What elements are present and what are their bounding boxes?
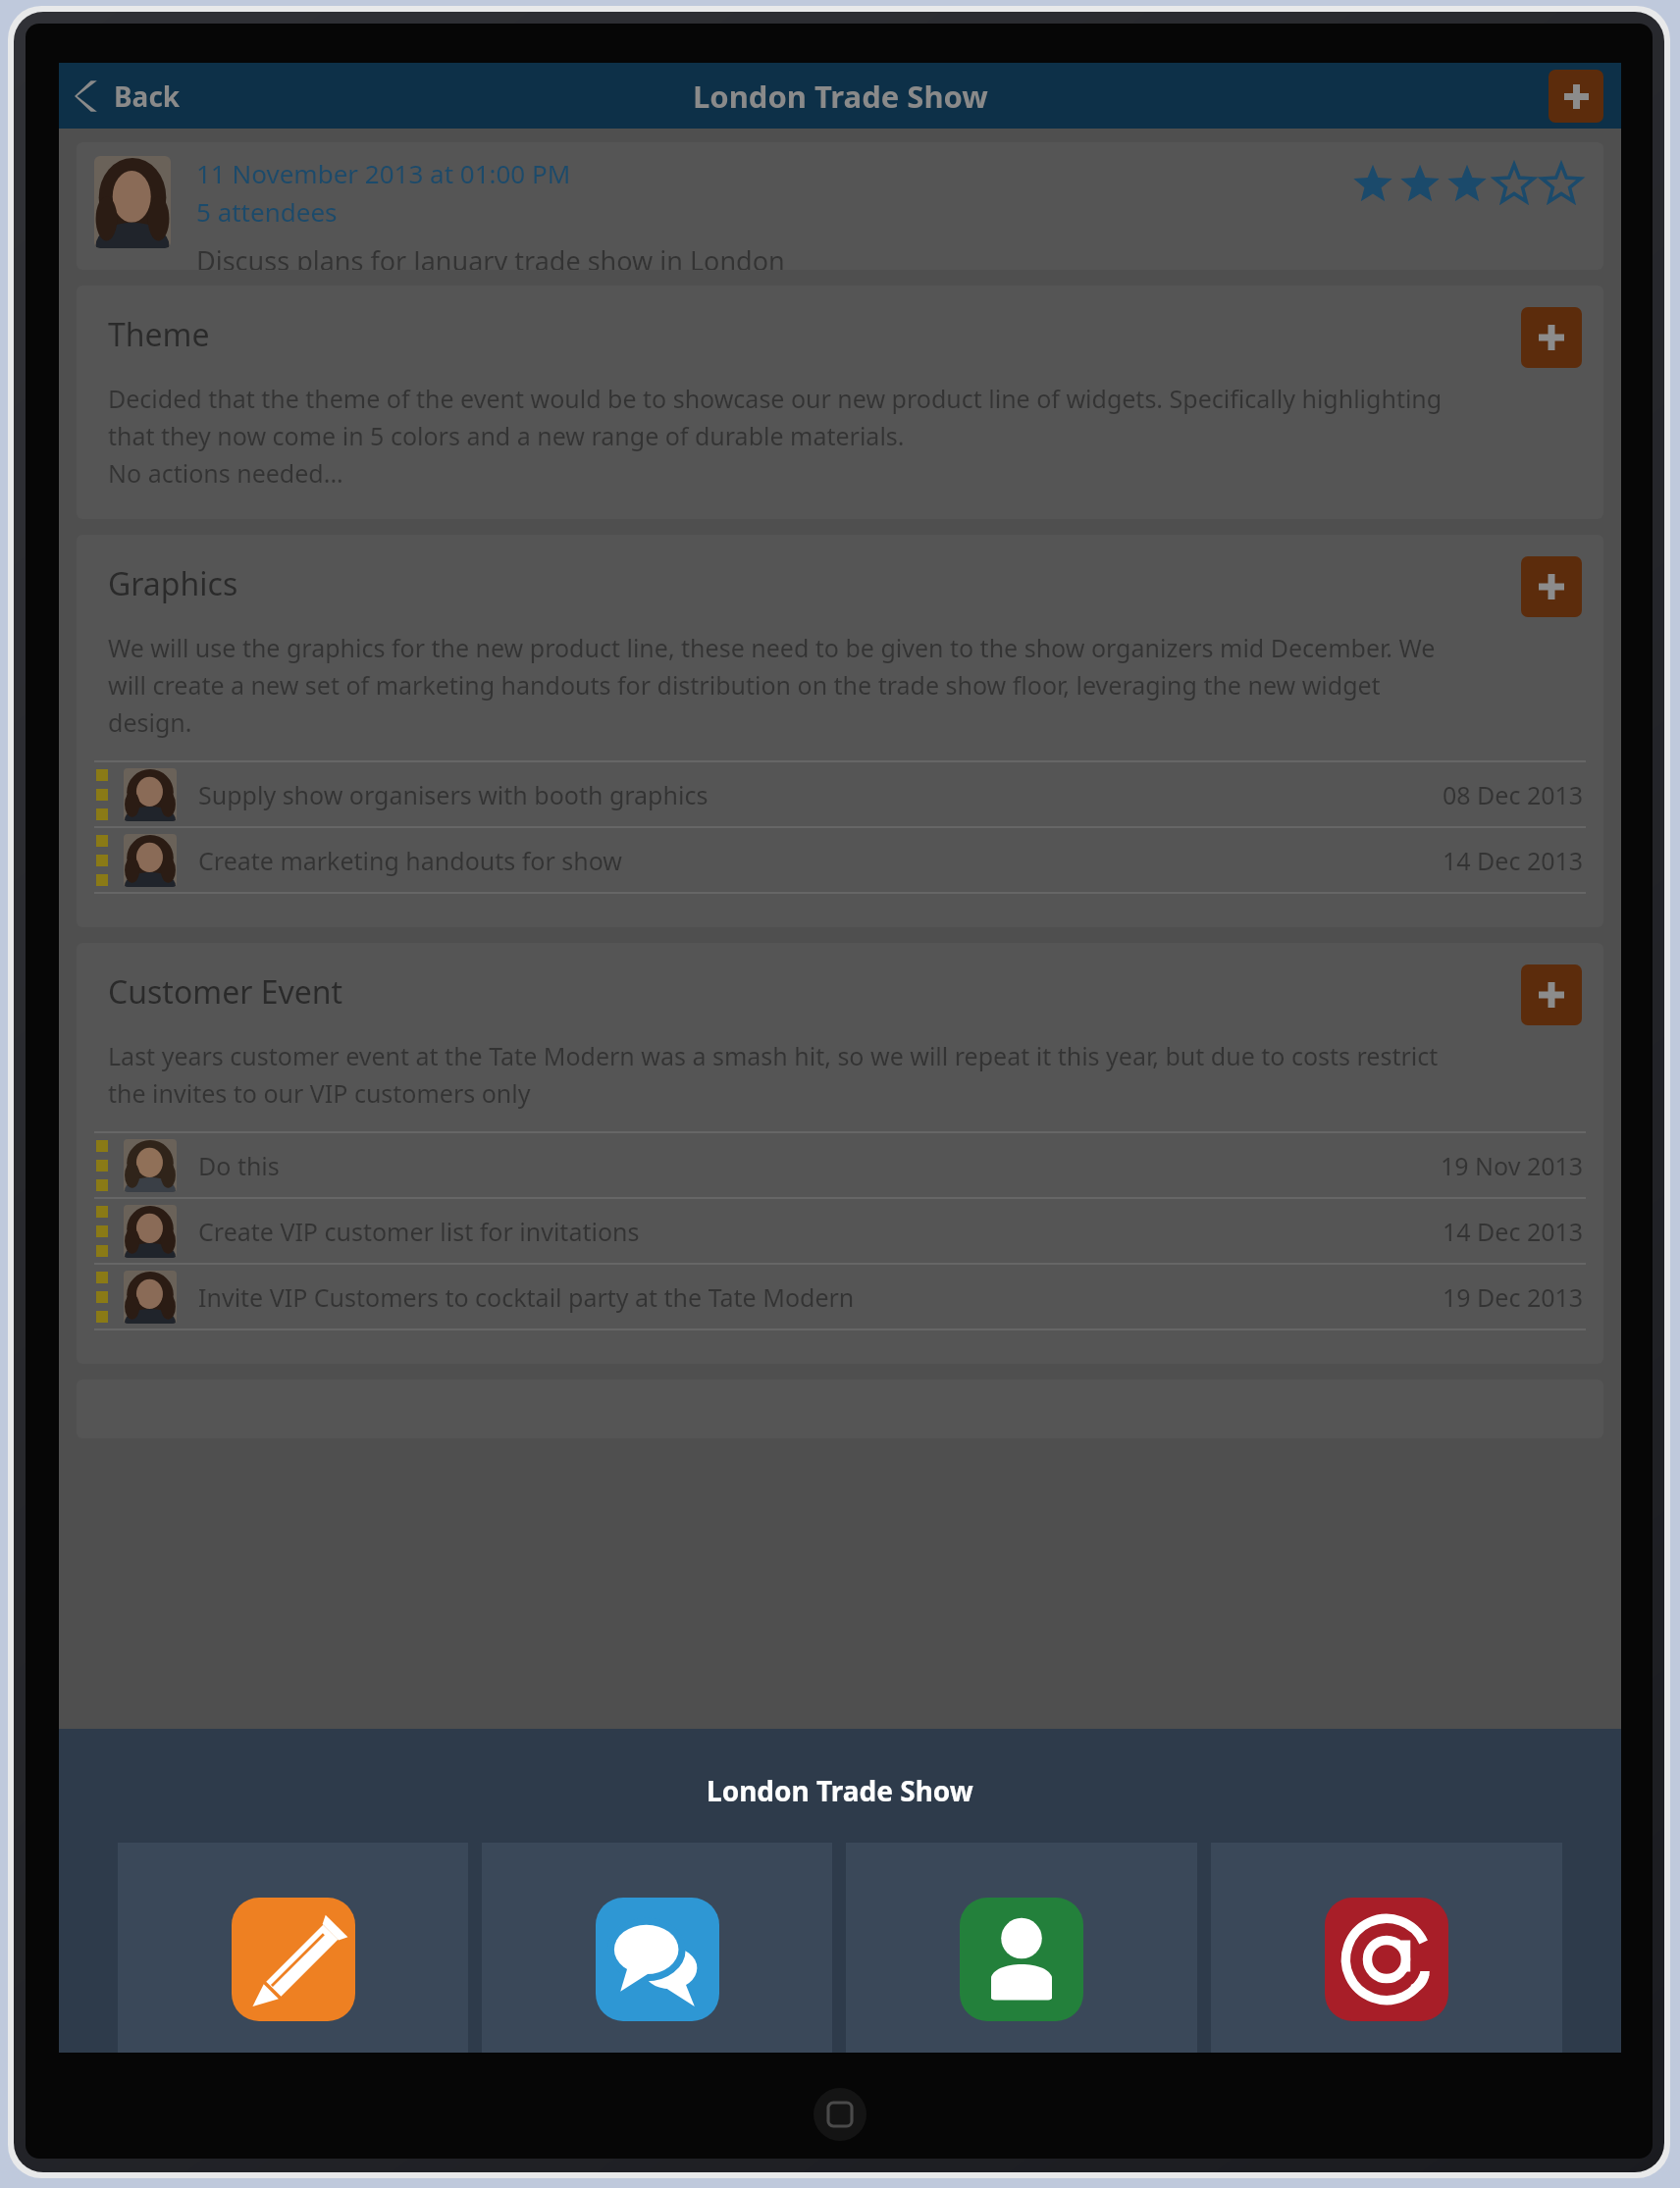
button[interactable]: Add <box>1521 556 1582 617</box>
button[interactable]: Add Agenda <box>118 1843 468 2053</box>
staticText: Create VIP customer list for invitations <box>198 1215 1443 1248</box>
button[interactable]: Do this <box>77 1133 1603 1197</box>
staticText: Discuss plans for January trade show in … <box>196 242 785 270</box>
button[interactable]: Create VIP customer list for invitations <box>77 1199 1603 1263</box>
button[interactable]: Create marketing handouts for show <box>77 828 1603 892</box>
staticText: Last years customer event at the Tate Mo… <box>108 1039 1439 1110</box>
staticText: Supply show organisers with booth graphi… <box>198 778 1443 811</box>
staticText: Create marketing handouts for show <box>198 844 1443 877</box>
staticText: Invite VIP Customers to cocktail party a… <box>198 1280 1443 1314</box>
button[interactable]: Back <box>59 63 200 129</box>
staticText: Back <box>114 78 181 115</box>
staticText: We will use the graphics for the new pro… <box>108 631 1436 739</box>
button[interactable]: 11 November 2013 at 01:00 PM <box>77 142 1603 270</box>
staticText: 14 Dec 2013 <box>1443 844 1584 877</box>
staticText: 19 Dec 2013 <box>1443 1280 1584 1314</box>
staticText: 08 Dec 2013 <box>1443 778 1584 811</box>
staticText: Theme <box>108 313 210 356</box>
button[interactable]: Supply show organisers with booth graphi… <box>77 762 1603 826</box>
staticText: Decided that the theme of the event woul… <box>108 382 1443 490</box>
button[interactable]: Add <box>1521 964 1582 1025</box>
button[interactable]: Follow-Up <box>1211 1843 1562 2053</box>
button[interactable]: Home <box>814 2088 866 2141</box>
staticText: London Trade Show <box>707 1772 973 1809</box>
button[interactable]: Add <box>1549 70 1603 123</box>
button[interactable]: Chatter <box>482 1843 832 2053</box>
button[interactable]: Invite VIP Customers to cocktail party a… <box>77 1265 1603 1328</box>
button[interactable]: Attendees <box>846 1843 1197 2053</box>
staticText: Graphics <box>108 562 238 605</box>
button[interactable]: Add <box>1521 307 1582 368</box>
staticText: 19 Nov 2013 <box>1441 1149 1584 1182</box>
staticText: 11 November 2013 at 01:00 PM <box>196 156 571 190</box>
staticText: Customer Event <box>108 970 343 1014</box>
staticText: 14 Dec 2013 <box>1443 1215 1584 1248</box>
staticText: 5 attendees <box>196 194 338 229</box>
staticText: London Trade Show <box>693 76 988 117</box>
